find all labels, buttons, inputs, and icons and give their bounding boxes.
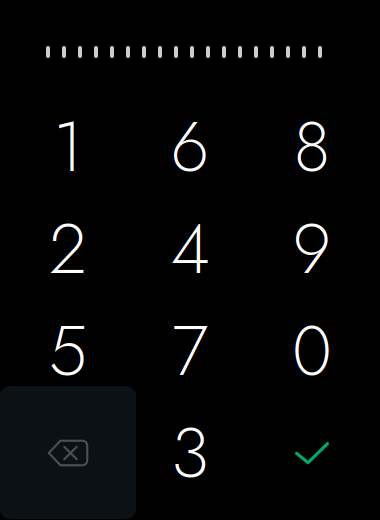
staticText: 2 xyxy=(49,199,87,299)
button[interactable]: 6 xyxy=(129,96,251,198)
staticText: 6 xyxy=(170,97,209,197)
button[interactable]: 3 xyxy=(129,402,251,504)
button[interactable]: 4 xyxy=(129,198,251,300)
button[interactable]: 9 xyxy=(251,198,373,300)
button[interactable]: 8 xyxy=(251,96,373,198)
button[interactable]: Confirm xyxy=(251,402,373,504)
staticText: 5 xyxy=(48,301,87,401)
staticText: 8 xyxy=(293,97,330,197)
button[interactable]: Delete xyxy=(7,402,129,504)
button[interactable]: 0 xyxy=(251,300,373,402)
staticText: 1 xyxy=(53,97,83,197)
staticText: 4 xyxy=(170,199,209,299)
button[interactable]: 2 xyxy=(7,198,129,300)
staticText: 9 xyxy=(292,199,331,299)
button[interactable]: 7 xyxy=(129,300,251,402)
staticText: 7 xyxy=(172,301,208,401)
button[interactable]: 1 xyxy=(7,96,129,198)
staticText: 0 xyxy=(292,301,332,401)
staticText: 3 xyxy=(171,403,209,503)
button[interactable]: 5 xyxy=(7,300,129,402)
